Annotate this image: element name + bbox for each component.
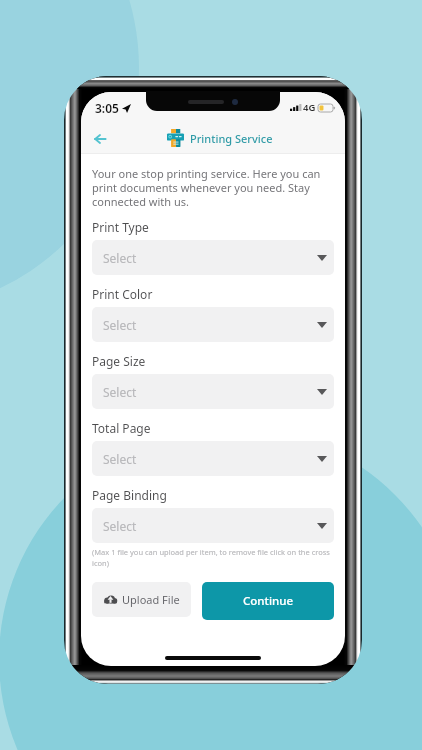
- staticText: Select: [103, 250, 137, 266]
- staticText: Your one stop printing service. Here you…: [92, 166, 334, 209]
- staticText: Select: [103, 384, 137, 400]
- staticText: Total Page: [92, 420, 151, 436]
- staticText: Select: [103, 317, 137, 333]
- staticText: Select: [103, 518, 137, 534]
- staticText: Printing Service: [190, 131, 273, 146]
- button[interactable]: Select: [92, 240, 334, 275]
- staticText: Select: [103, 451, 137, 467]
- staticText: Continue: [243, 593, 294, 609]
- button[interactable]: Continue: [202, 582, 334, 620]
- staticText: Print Color: [92, 286, 153, 302]
- button[interactable]: Back: [87, 125, 113, 151]
- button[interactable]: Select: [92, 441, 334, 476]
- button[interactable]: Select: [92, 307, 334, 342]
- staticText: Page Size: [92, 353, 146, 369]
- staticText: 4G: [303, 101, 316, 114]
- staticText: Upload File: [122, 592, 180, 607]
- staticText: (Max 1 file you can upload per item, to …: [92, 547, 334, 568]
- button[interactable]: Upload File: [92, 582, 191, 617]
- staticText: 3:05: [95, 100, 119, 116]
- button[interactable]: Select: [92, 374, 334, 409]
- staticText: Print Type: [92, 219, 149, 235]
- staticText: Page Binding: [92, 487, 167, 503]
- button[interactable]: Select: [92, 508, 334, 543]
